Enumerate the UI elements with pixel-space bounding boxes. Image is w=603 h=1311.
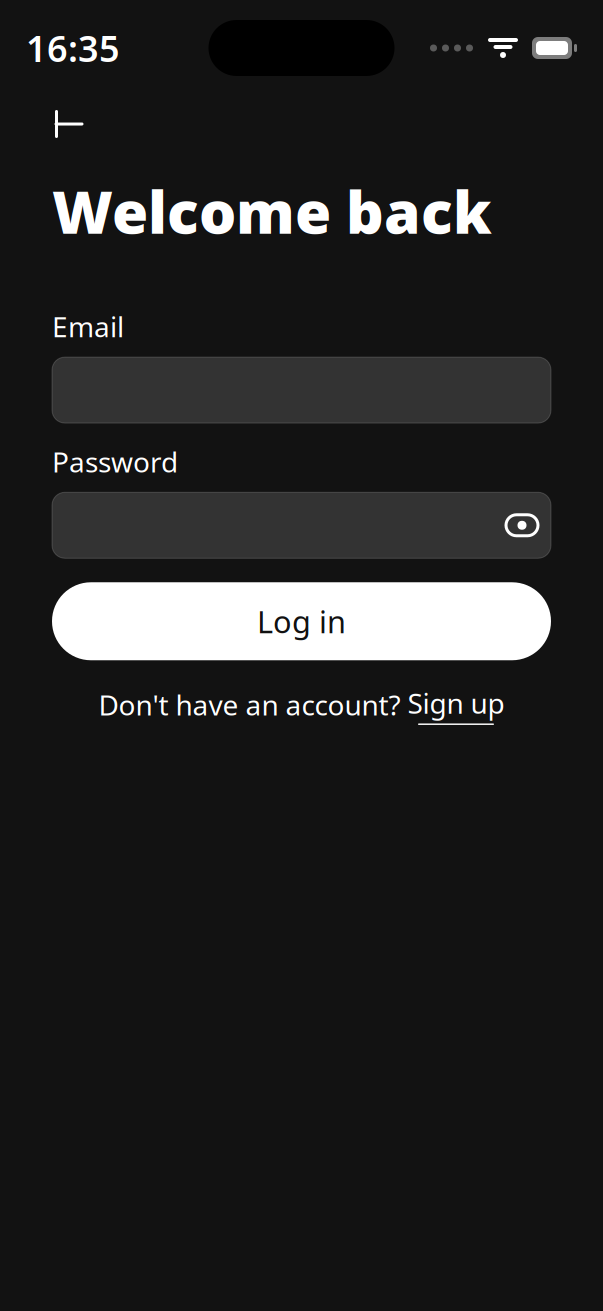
staticText: Sign up (407, 684, 504, 721)
staticText: 16:35 (26, 24, 120, 72)
button[interactable]: Back (42, 97, 96, 151)
button[interactable]: Log in (52, 582, 551, 660)
staticText: Welcome back (52, 172, 492, 250)
button[interactable]: Show password (493, 492, 551, 558)
staticText: Password (52, 443, 178, 480)
staticText: Log in (257, 601, 346, 642)
staticText: Don't have an account? (98, 686, 400, 723)
staticText: Email (52, 308, 124, 345)
button[interactable]: Sign up (407, 684, 504, 725)
